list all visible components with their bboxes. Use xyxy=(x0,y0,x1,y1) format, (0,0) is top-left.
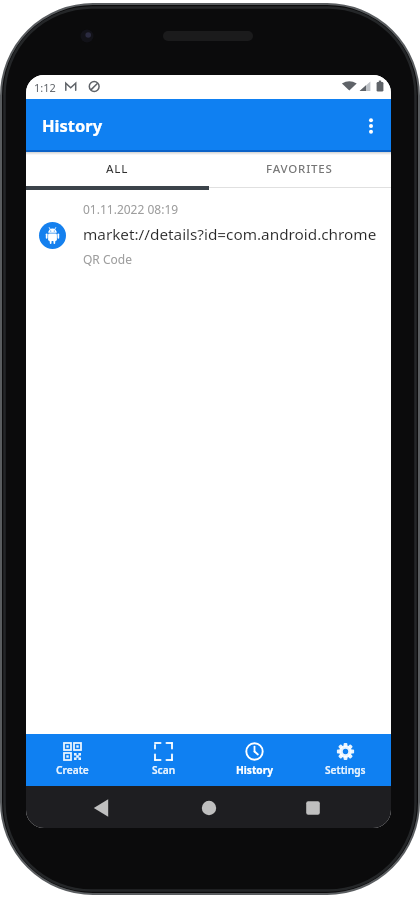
staticText: Settings xyxy=(325,763,366,777)
staticText: Scan xyxy=(152,763,176,777)
button[interactable] xyxy=(351,106,391,146)
staticText: market://details?id=com.android.chrome xyxy=(83,224,377,245)
button[interactable]: Scan xyxy=(118,734,209,786)
button[interactable] xyxy=(293,788,333,828)
button[interactable]: History xyxy=(209,734,300,786)
button[interactable]: Settings xyxy=(300,734,391,786)
staticText: FAVORITES xyxy=(266,161,333,177)
staticText: 01.11.2022 08:19 xyxy=(83,201,179,217)
button[interactable] xyxy=(81,788,121,828)
button[interactable]: ALL xyxy=(26,152,208,190)
staticText: 1:12 xyxy=(34,80,56,95)
button[interactable]: Create xyxy=(26,734,118,786)
button[interactable] xyxy=(189,788,229,828)
staticText: QR Code xyxy=(83,251,132,267)
button[interactable]: FAVORITES xyxy=(208,152,391,190)
button[interactable]: 01.11.2022 08:19 xyxy=(26,190,391,282)
staticText: ALL xyxy=(106,161,129,177)
staticText: History xyxy=(236,763,274,777)
staticText: Create xyxy=(56,763,89,777)
staticText: History xyxy=(42,114,103,136)
